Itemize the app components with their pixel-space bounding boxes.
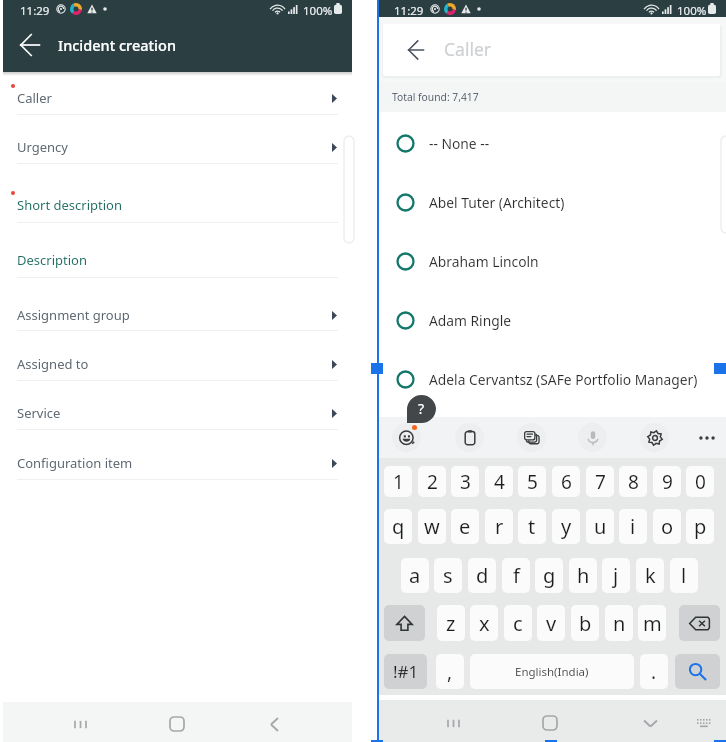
button[interactable]: Hide keyboard [636,709,664,737]
button[interactable]: Urgency [3,130,352,164]
button[interactable]: More options [692,423,721,452]
button[interactable]: Recents [66,710,94,738]
button[interactable]: Back [260,710,288,738]
button[interactable]: Home [163,710,191,738]
staticText: Adela Cervantsz (SAFe Portfolio Manager) [429,370,698,389]
button[interactable]: Voice input [578,423,607,452]
button[interactable]: x [470,605,498,641]
button[interactable]: Change keyboard [690,709,718,737]
button[interactable]: c [504,605,532,641]
button[interactable]: Assigned to [3,347,352,381]
button[interactable]: i [619,509,647,544]
staticText: Assigned to [17,355,89,373]
button[interactable]: k [636,558,664,593]
button[interactable]: , [436,654,464,689]
button[interactable]: 0 [686,466,714,497]
staticText: 100% [303,3,333,19]
button[interactable]: -- None -- [377,120,726,166]
button[interactable]: Search [675,654,720,689]
button[interactable]: z [437,605,465,641]
button[interactable]: v [537,605,565,641]
button[interactable]: Settings [640,423,669,452]
staticText: f [513,562,520,589]
button[interactable]: l [670,558,698,593]
button[interactable]: Configuration item [3,446,352,480]
button[interactable]: Back [396,30,436,70]
button[interactable]: 3 [451,466,479,497]
staticText: s [443,562,453,589]
staticText: u [594,513,607,540]
button[interactable]: f [502,558,530,593]
staticText: 3 [460,469,471,495]
staticText: 6 [561,469,572,495]
button[interactable]: Back [8,23,52,67]
staticText: i [630,513,636,540]
button[interactable]: Assignment group [3,298,352,332]
button[interactable]: Text stickers [517,423,546,452]
button[interactable]: Home [536,709,564,737]
button[interactable]: Recents [439,709,467,737]
staticText: 8 [628,469,639,495]
button[interactable]: w [418,509,446,544]
button[interactable]: 7 [586,466,614,497]
button[interactable]: g [535,558,563,593]
button[interactable]: Abraham Lincoln [377,238,726,284]
staticText: Incident creation [58,35,176,55]
button[interactable]: y [552,509,580,544]
button[interactable]: Back [383,24,720,76]
staticText: ? [418,399,425,418]
staticText: Assignment group [17,306,130,324]
button[interactable]: d [468,558,496,593]
staticText: 1 [393,469,404,495]
button[interactable]: 8 [619,466,647,497]
button[interactable]: 4 [485,466,513,497]
button[interactable]: 2 [418,466,446,497]
button[interactable]: o [653,509,681,544]
staticText: d [476,562,489,589]
button[interactable]: q [384,509,412,544]
button[interactable]: a [401,558,429,593]
button[interactable]: Adela Cervantsz (SAFe Portfolio Manager) [377,356,726,402]
button[interactable]: Clipboard [455,423,484,452]
staticText: l [681,562,687,589]
staticText: Adam Ringle [429,311,512,330]
button[interactable]: Adam Ringle [377,297,726,343]
button[interactable]: !#1 [384,654,427,689]
staticText: English(India) [515,664,589,680]
staticText: a [409,562,421,589]
button[interactable]: n [605,605,633,641]
button[interactable]: Shift [384,605,425,641]
staticText: 5 [527,469,538,495]
button[interactable]: h [569,558,597,593]
button[interactable]: Backspace [679,605,720,641]
button[interactable]: t [518,509,546,544]
button[interactable]: e [451,509,479,544]
button[interactable]: 1 [384,466,412,497]
button[interactable]: s [434,558,462,593]
button[interactable]: Caller [3,81,352,115]
button[interactable]: Emoji [392,423,421,452]
button[interactable]: r [485,509,513,544]
staticText: !#1 [393,660,419,683]
staticText: n [613,610,626,637]
staticText: 9 [662,469,673,495]
button[interactable]: 6 [552,466,580,497]
button[interactable]: 9 [653,466,681,497]
button[interactable]: 5 [518,466,546,497]
button[interactable]: u [586,509,614,544]
button[interactable]: p [686,509,714,544]
staticText: 11:29 [20,3,50,19]
staticText: w [424,513,440,540]
staticText: 0 [695,469,706,495]
button[interactable]: Space [470,654,634,689]
staticText: Caller [17,89,52,107]
button[interactable]: Short description [3,188,352,222]
button[interactable]: b [571,605,599,641]
button[interactable]: Description [3,243,352,277]
button[interactable]: Abel Tuter (Architect) [377,179,726,225]
staticText: 100% [677,3,707,19]
button[interactable]: j [602,558,630,593]
button[interactable]: . [640,654,668,689]
button[interactable]: Service [3,396,352,430]
button[interactable]: m [638,605,666,641]
